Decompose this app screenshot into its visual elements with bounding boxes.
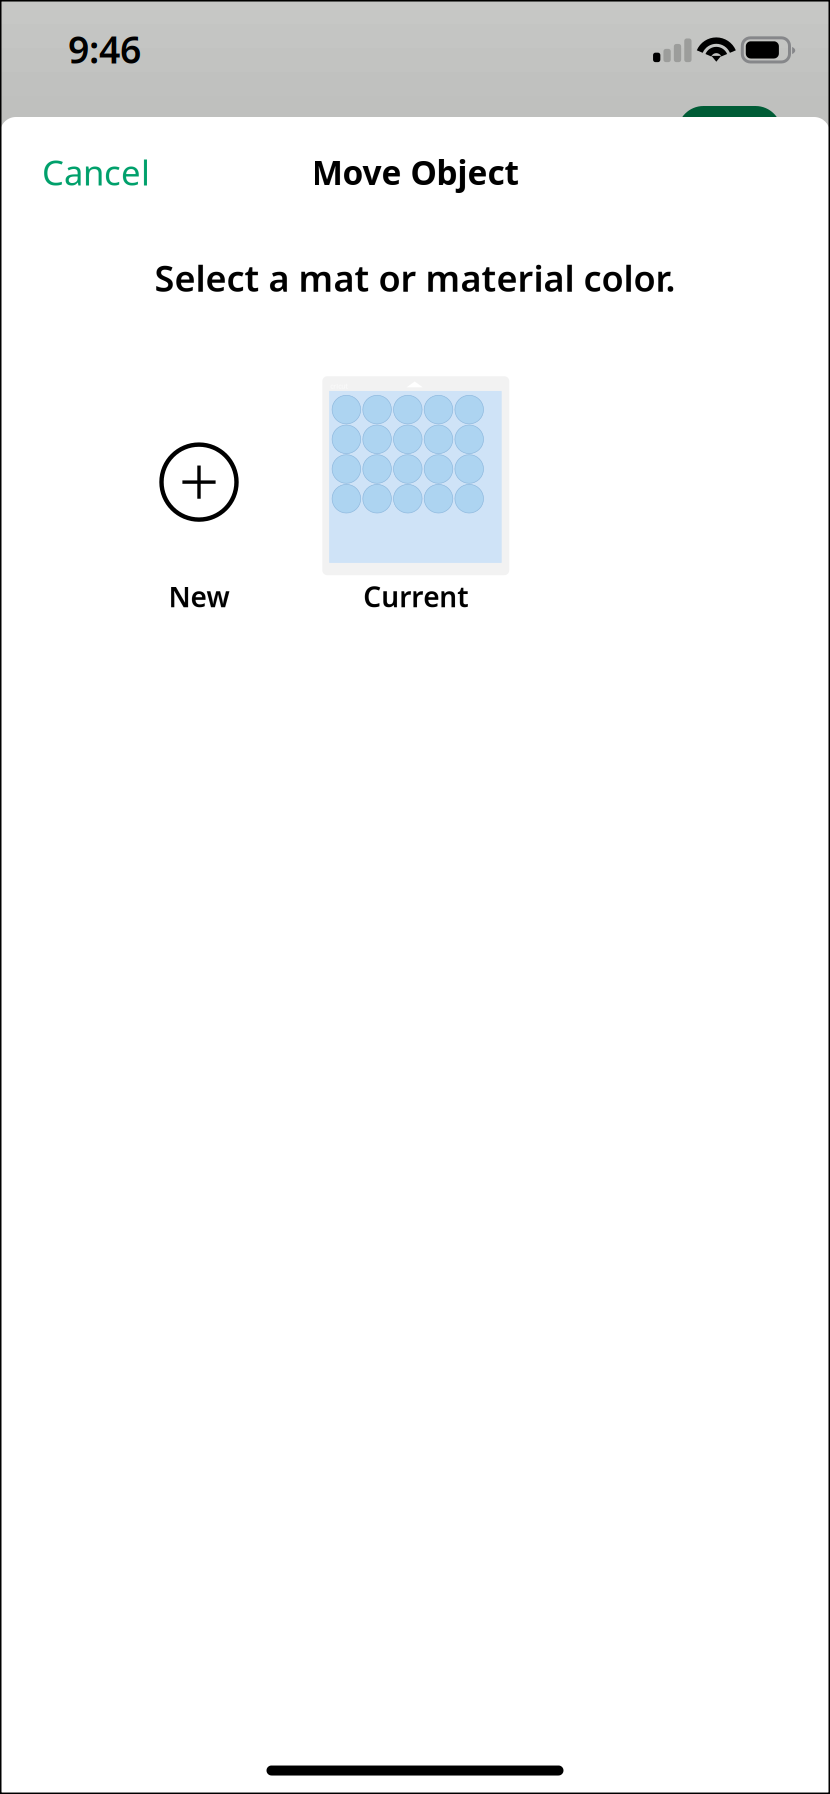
button[interactable]: cricut (322, 376, 509, 615)
button[interactable]: Cancel (0, 140, 170, 204)
staticText: Select a mat or material color. (154, 254, 675, 302)
staticText: Current (363, 578, 468, 615)
staticText: 9:46 (68, 24, 141, 74)
staticText: New (168, 578, 229, 615)
button[interactable]: New (105, 376, 292, 615)
staticText: Move Object (311, 150, 518, 194)
staticText: Cancel (42, 149, 150, 195)
